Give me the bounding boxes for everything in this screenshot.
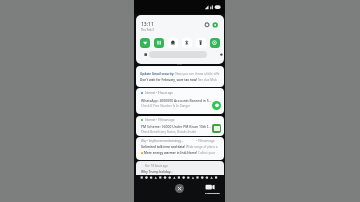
staticText: Unlimited talk time and data! Wide range… — [141, 145, 218, 149]
staticText: More energy warmer in Indi-Home! Collect… — [144, 151, 216, 155]
button[interactable]: Internet • 9 hours ago — [136, 88, 224, 114]
button[interactable] — [196, 38, 206, 48]
staticText: Thu Feb 3 — [141, 28, 154, 32]
button[interactable]: Update Gmail security: Now you can throw… — [136, 66, 224, 87]
staticText: Ha • 18 hours ago — [145, 164, 168, 168]
staticText: V RECORDER — [205, 191, 220, 194]
staticText: Way • brightonmineralsstrategy... — [141, 139, 184, 143]
staticText: PM Scheme: ₹6000 Under PM Kisan 10th I..… — [141, 124, 212, 129]
button[interactable] — [149, 51, 207, 58]
staticText: Internet • 19 hours ago — [145, 118, 175, 122]
button[interactable] — [182, 38, 192, 48]
staticText: WhatsApp: 2000000 Accounts Banned in S..… — [141, 98, 212, 103]
staticText: Check If Your Number Is In Danger — [141, 104, 191, 108]
button[interactable] — [210, 38, 220, 48]
staticText: • 19 hours ago — [196, 139, 215, 143]
button[interactable] — [140, 38, 150, 48]
button[interactable]: Ha • 18 hours ago — [136, 161, 224, 175]
staticText: Internet • 9 hours ago — [145, 91, 173, 95]
button[interactable]: Way • brightonmineralsstrategy... — [136, 137, 224, 160]
staticText: Don't wait for February, save tax now! S… — [140, 78, 217, 82]
staticText: Why Trump holiday... — [141, 170, 173, 174]
staticText: 13:11 — [141, 21, 154, 28]
button[interactable] — [168, 38, 178, 48]
button[interactable]: Internet • 19 hours ago — [136, 116, 224, 136]
button[interactable] — [154, 38, 164, 48]
staticText: Check Beneficiary Status, Details Inside — [141, 130, 197, 134]
button[interactable] — [175, 184, 184, 193]
staticText: Update Gmail security: Now you can throw… — [140, 72, 220, 76]
